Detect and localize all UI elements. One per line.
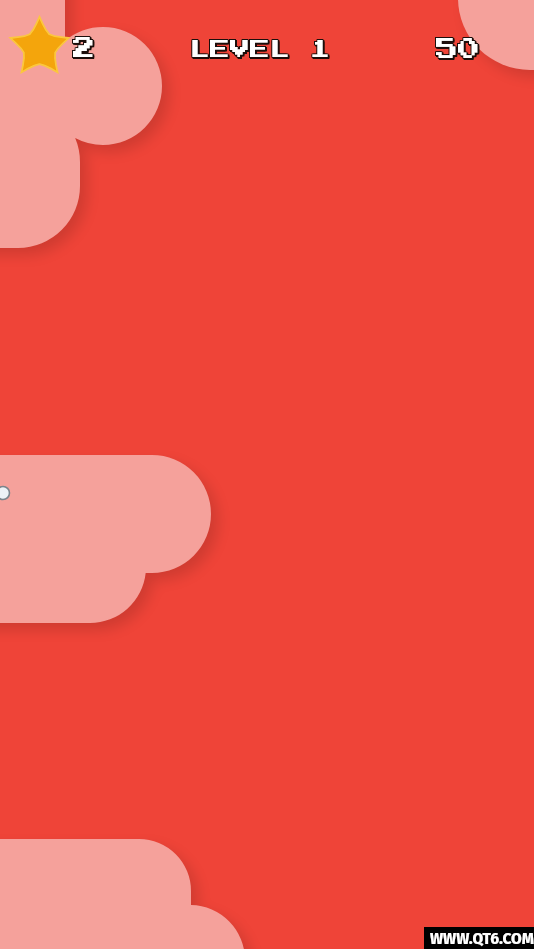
- staticText: 2: [75, 38, 98, 60]
- staticText: 50: [436, 38, 481, 60]
- staticText: 2: [72, 38, 95, 60]
- staticText: LEVEL 1: [189, 39, 329, 59]
- staticText: LEVEL 1: [190, 40, 330, 60]
- staticText: LEVEL 1: [192, 42, 332, 62]
- staticText: 50: [436, 40, 481, 62]
- staticText: 50: [437, 38, 482, 60]
- staticText: 50: [436, 41, 481, 63]
- staticText: 2: [74, 39, 97, 61]
- staticText: 2: [73, 40, 96, 62]
- staticText: LEVEL 1: [190, 41, 330, 61]
- staticText: 50: [438, 39, 483, 61]
- staticText: WWW.QT6.COM: [430, 928, 534, 948]
- staticText: 50: [437, 41, 482, 63]
- staticText: LEVEL 1: [191, 40, 331, 60]
- staticText: 2: [73, 39, 96, 61]
- staticText: 2: [75, 40, 98, 62]
- staticText: 2: [73, 37, 96, 59]
- staticText: 2: [75, 39, 98, 61]
- staticText: 2: [73, 38, 96, 60]
- staticText: LEVEL 1: [190, 39, 330, 59]
- staticText: LEVEL 1: [192, 41, 332, 61]
- staticText: LEVEL 1: [191, 39, 331, 59]
- staticText: LEVEL 1: [189, 41, 329, 61]
- staticText: 2: [74, 38, 97, 60]
- staticText: LEVEL 1: [192, 40, 332, 60]
- staticText: 50: [437, 39, 482, 61]
- staticText: LEVEL 1: [191, 42, 331, 62]
- staticText: 50: [438, 41, 483, 63]
- staticText: 2: [74, 40, 97, 62]
- staticText: 2: [74, 37, 97, 59]
- staticText: LEVEL 1: [190, 42, 330, 62]
- staticText: 50: [435, 40, 480, 62]
- staticText: LEVEL 1: [191, 41, 331, 61]
- staticText: LEVEL 1: [189, 40, 329, 60]
- staticText: 50: [437, 40, 482, 62]
- staticText: 2: [72, 37, 95, 59]
- staticText: 50: [436, 39, 481, 61]
- staticText: 2: [72, 39, 95, 61]
- staticText: 50: [438, 40, 483, 62]
- staticText: 50: [435, 38, 480, 60]
- staticText: 50: [435, 39, 480, 61]
